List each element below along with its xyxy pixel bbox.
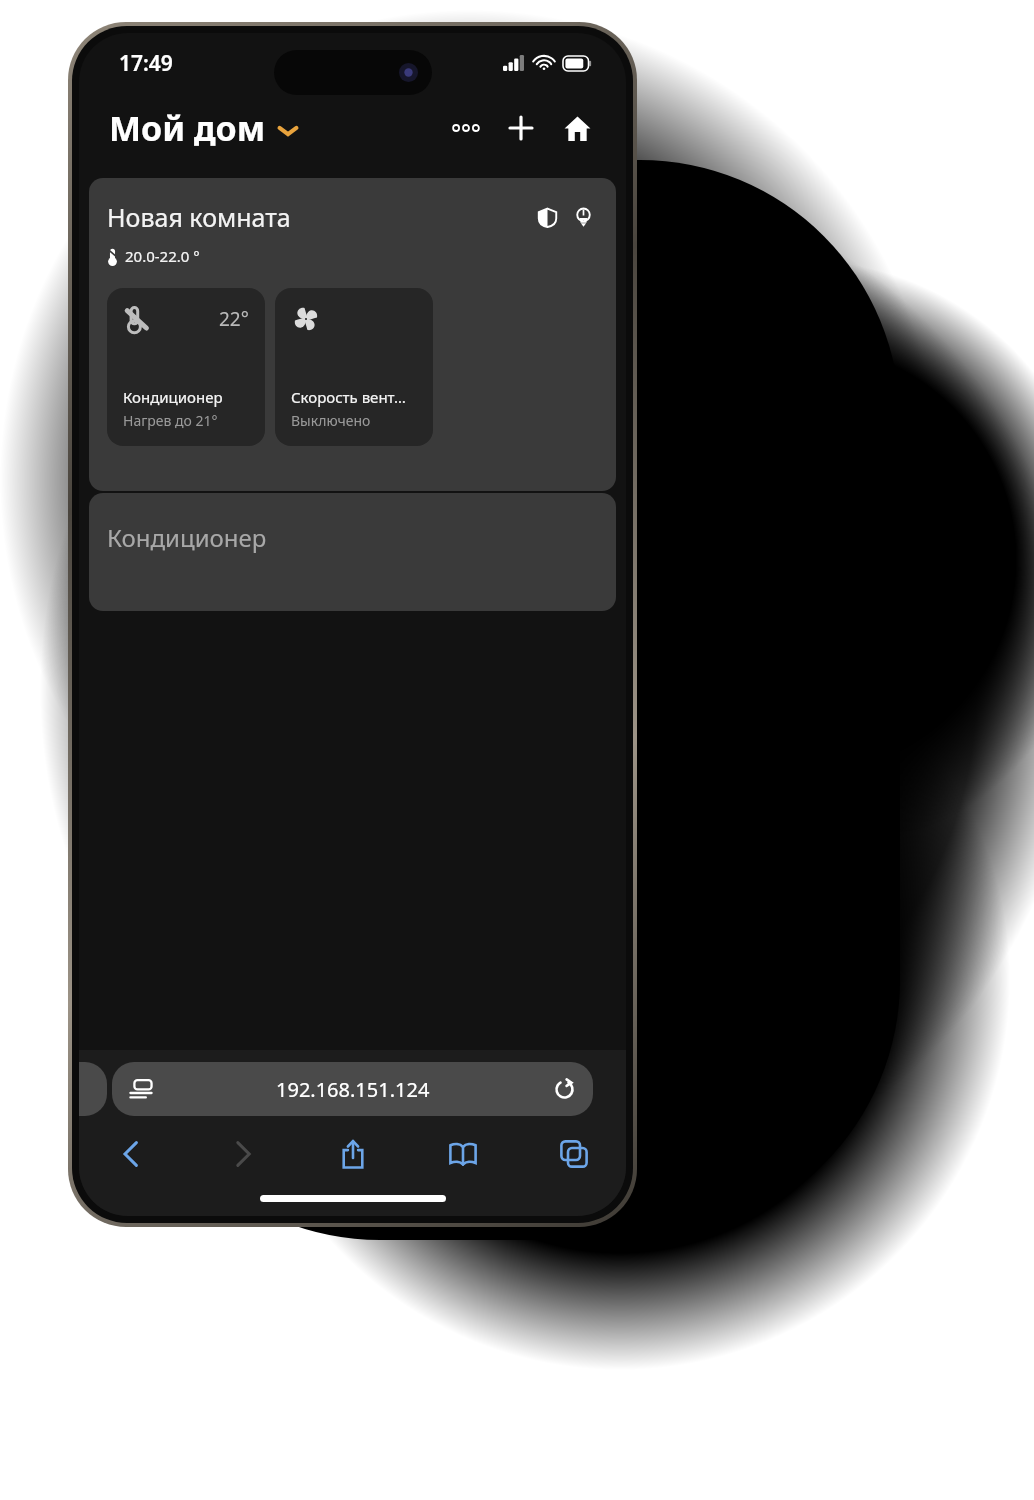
button[interactable]: Добавить: [498, 105, 544, 151]
staticText: Кондиционер: [123, 387, 223, 407]
button[interactable]: Новая комната: [89, 178, 616, 491]
button[interactable]: Дом: [554, 105, 600, 151]
button[interactable]: Скорость вент…: [275, 288, 433, 446]
staticText: 17:49: [119, 49, 173, 78]
staticText: Выключено: [291, 411, 371, 430]
button[interactable]: Ещё: [444, 106, 488, 150]
button[interactable]: 192.168.151.124: [112, 1062, 593, 1116]
staticText: Кондиционер: [107, 521, 267, 554]
button[interactable]: Свет: [568, 202, 598, 232]
staticText: Скорость вент…: [291, 387, 406, 407]
button[interactable]: Кондиционер: [89, 493, 616, 611]
button[interactable]: 22°: [107, 288, 265, 446]
staticText: Мой дом: [109, 105, 266, 151]
button[interactable]: Поделиться: [327, 1128, 379, 1180]
staticText: 20.0-22.0 °: [125, 246, 200, 266]
button[interactable]: Мой дом: [109, 105, 298, 151]
staticText: Нагрев до 21°: [123, 411, 218, 430]
button[interactable]: Закладки: [437, 1128, 489, 1180]
button[interactable]: Назад: [105, 1128, 157, 1180]
staticText: 192.168.151.124: [276, 1076, 430, 1103]
staticText: Новая комната: [107, 200, 291, 234]
button[interactable]: Охрана: [532, 202, 562, 232]
button[interactable]: Вкладки: [548, 1128, 600, 1180]
staticText: 22°: [219, 306, 249, 332]
button[interactable]: Вперёд: [216, 1128, 268, 1180]
